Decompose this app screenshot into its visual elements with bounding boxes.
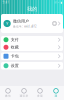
button[interactable]: 支付 xyxy=(1,36,63,43)
button[interactable]: 卡包 xyxy=(1,52,63,60)
staticText: 设置 xyxy=(11,63,19,68)
staticText: 卡包 xyxy=(11,54,19,59)
staticText: 支付 xyxy=(11,37,19,42)
staticText: ıl ᛜ ▮ xyxy=(54,1,61,4)
staticText: 微信用户 xyxy=(13,19,29,24)
staticText: 微信 xyxy=(5,94,11,97)
staticText: Y xyxy=(6,21,8,26)
button[interactable]: 发现 xyxy=(32,86,48,100)
button[interactable]: 微信 xyxy=(0,86,16,100)
staticText: 微信号: wxid_a8f2 xyxy=(13,25,37,28)
button[interactable]: 通讯录 xyxy=(16,86,32,100)
staticText: 9:41 xyxy=(2,1,9,4)
button[interactable]: 收藏 xyxy=(1,43,63,51)
staticText: 收藏 xyxy=(11,45,19,50)
button[interactable]: Y xyxy=(1,14,63,33)
button[interactable]: 我 xyxy=(48,86,64,100)
button[interactable]: 设置 xyxy=(1,62,63,69)
staticText: 我 xyxy=(54,94,57,97)
staticText: 通讯录 xyxy=(19,94,28,97)
staticText: 发现 xyxy=(37,94,43,97)
staticText: 我的 xyxy=(27,6,37,12)
